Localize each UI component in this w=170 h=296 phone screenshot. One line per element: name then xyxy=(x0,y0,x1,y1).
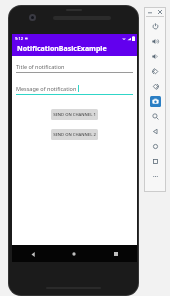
button[interactable]: Recents xyxy=(110,248,122,260)
staticText: NotificationBasicExample xyxy=(17,44,107,54)
button[interactable]: Volume up xyxy=(150,36,161,47)
staticText: SEND ON CHANNEL 2 xyxy=(53,132,96,138)
button[interactable]: Power xyxy=(150,21,161,32)
staticText: Title of notification xyxy=(16,63,65,70)
button[interactable]: Title of notification xyxy=(16,63,133,73)
button[interactable]: Back xyxy=(27,248,39,260)
button[interactable]: Take screenshot xyxy=(150,96,161,107)
button[interactable]: Volume down xyxy=(150,51,161,62)
button[interactable]: Rotate right xyxy=(150,81,161,92)
button[interactable]: More xyxy=(150,171,161,182)
button[interactable]: Back xyxy=(150,126,161,137)
button[interactable]: Zoom xyxy=(150,111,161,122)
staticText: 9:12 xyxy=(15,36,23,41)
button[interactable]: SEND ON CHANNEL 2 xyxy=(51,129,98,140)
button[interactable]: Home xyxy=(68,248,80,260)
button[interactable]: SEND ON CHANNEL 1 xyxy=(51,109,98,120)
button[interactable]: Home xyxy=(150,141,161,152)
button[interactable]: Message of notification xyxy=(16,85,133,95)
button[interactable]: Minimize xyxy=(147,9,153,15)
staticText: Message of notification xyxy=(16,85,77,92)
button[interactable]: Close xyxy=(157,9,163,15)
button[interactable]: Overview xyxy=(150,156,161,167)
staticText: SEND ON CHANNEL 1 xyxy=(53,112,96,118)
button[interactable]: Rotate left xyxy=(150,66,161,77)
